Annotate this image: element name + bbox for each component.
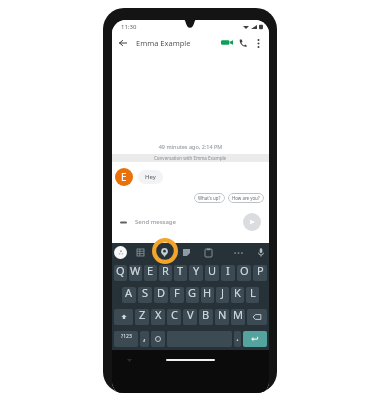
button[interactable]: del — [247, 309, 267, 325]
button[interactable]: F — [170, 287, 184, 303]
staticText: O — [240, 265, 249, 278]
button[interactable]: A — [122, 287, 136, 303]
button[interactable]: Location — [158, 246, 171, 259]
button[interactable]: Attach — [118, 217, 129, 228]
button[interactable]: Voice input — [254, 246, 267, 259]
button[interactable]: More options — [251, 36, 265, 50]
staticText: F — [174, 287, 180, 300]
staticText: N — [218, 309, 227, 322]
staticText: I — [226, 265, 230, 278]
button[interactable]: Y — [189, 265, 203, 281]
button[interactable]: R — [159, 265, 172, 281]
button[interactable]: Text editing — [134, 246, 147, 259]
staticText: Y — [193, 265, 200, 278]
button[interactable]: O — [237, 265, 251, 281]
staticText: E — [121, 170, 127, 184]
button[interactable]: Call — [236, 36, 250, 50]
staticText: S — [142, 287, 149, 300]
button[interactable]: T — [174, 265, 187, 281]
staticText: X — [155, 309, 162, 322]
button[interactable]: Clipboard — [202, 246, 215, 259]
staticText: Conversation with Emma Example — [154, 155, 227, 161]
staticText: R — [162, 265, 169, 278]
button[interactable]: Send — [243, 213, 261, 231]
staticText: C — [171, 309, 178, 322]
button[interactable]: . — [234, 331, 241, 347]
button[interactable]: Hey — [138, 170, 163, 184]
button[interactable]: P — [253, 265, 267, 281]
button[interactable]: , — [140, 331, 149, 347]
staticText: M — [233, 309, 243, 322]
staticText: V — [187, 309, 194, 322]
staticText: Q — [116, 265, 125, 278]
staticText: Z — [139, 309, 146, 322]
button[interactable]: shift — [114, 309, 133, 325]
staticText: L — [250, 287, 256, 300]
staticText: 49 minutes ago, 2:14 PM — [112, 143, 269, 150]
staticText: . — [236, 331, 239, 344]
staticText: A — [125, 287, 133, 300]
staticText: B — [202, 309, 210, 322]
button[interactable]: D — [154, 287, 168, 303]
button[interactable]: E — [144, 265, 157, 281]
staticText: E — [147, 265, 154, 278]
staticText: ?123 — [121, 333, 132, 340]
button[interactable]: S — [138, 287, 152, 303]
button[interactable]: Video call — [219, 35, 234, 50]
button[interactable]: V — [183, 309, 197, 325]
button[interactable]: U — [205, 265, 219, 281]
button[interactable]: C — [167, 309, 181, 325]
staticText: Hey — [145, 173, 156, 181]
button[interactable]: What's up? — [194, 193, 225, 203]
button[interactable]: Back — [115, 35, 130, 50]
staticText: J — [221, 287, 225, 300]
button[interactable]: W — [129, 265, 142, 281]
staticText: G — [188, 287, 197, 300]
button[interactable]: H — [201, 287, 214, 303]
staticText: Send message — [135, 218, 176, 226]
button[interactable]: L — [246, 287, 259, 303]
button[interactable]: E — [115, 168, 133, 186]
button[interactable]: I — [221, 265, 235, 281]
staticText: Emma Example — [136, 38, 191, 48]
staticText: , — [143, 331, 146, 344]
staticText: How are you? — [232, 195, 260, 201]
staticText: U — [208, 265, 217, 278]
button[interactable]: G — [186, 287, 199, 303]
button[interactable]: ?123 — [114, 331, 138, 347]
button[interactable]: How are you? — [228, 193, 264, 203]
staticText: W — [130, 265, 141, 278]
staticText: T — [177, 265, 184, 278]
button[interactable]: N — [215, 309, 229, 325]
button[interactable]: B — [199, 309, 213, 325]
staticText: P — [257, 265, 264, 278]
button[interactable]: Send — [243, 331, 267, 347]
staticText: D — [157, 287, 166, 300]
button[interactable]: Q — [114, 265, 127, 281]
button[interactable]: Google Assistant — [114, 246, 127, 259]
button[interactable]: K — [231, 287, 244, 303]
button[interactable]: M — [231, 309, 245, 325]
button[interactable]: emoji — [151, 331, 165, 347]
button[interactable]: Stickers — [180, 246, 193, 259]
staticText: What's up? — [198, 195, 221, 201]
staticText: H — [203, 287, 212, 300]
button[interactable]: Z — [135, 309, 149, 325]
button[interactable]: X — [151, 309, 165, 325]
staticText: K — [234, 287, 241, 300]
button[interactable]: More options — [232, 246, 245, 259]
button[interactable]: J — [216, 287, 229, 303]
staticText: 11:30 — [121, 23, 137, 31]
